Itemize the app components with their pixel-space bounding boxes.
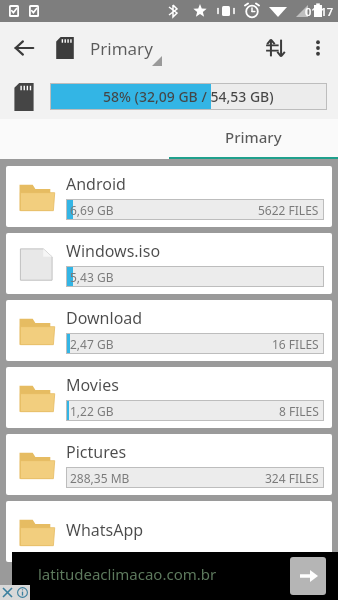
button[interactable]: Download	[6, 300, 332, 361]
staticText: Movies	[66, 374, 119, 396]
button[interactable]: Primary	[90, 22, 254, 74]
button[interactable]: Ad info	[15, 585, 30, 600]
button[interactable]: latitudeaclimacao.com.br	[12, 552, 338, 600]
staticText: 8 FILES	[279, 403, 319, 419]
staticText: latitudeaclimacao.com.br	[38, 564, 217, 584]
button[interactable]: WhatsApp	[6, 501, 332, 562]
staticText: 2,47 GB	[70, 336, 114, 352]
staticText: Primary	[90, 37, 153, 60]
staticText: Windows.iso	[66, 240, 161, 262]
staticText: 58% (32,09 GB / 54,53 GB)	[103, 87, 274, 106]
staticText: WhatsApp	[66, 519, 144, 541]
staticText: 01:17	[305, 4, 334, 19]
button[interactable]: Close ad	[0, 585, 15, 600]
button[interactable]: Open ad	[290, 557, 326, 595]
staticText: 16 FILES	[272, 336, 319, 352]
staticText: Pictures	[66, 441, 127, 463]
staticText: 324 FILES	[265, 470, 319, 486]
staticText: 288,35 MB	[70, 470, 130, 486]
button[interactable]: More options	[298, 28, 338, 68]
button[interactable]: Movies	[6, 367, 332, 428]
button[interactable]: Back	[0, 24, 48, 72]
button[interactable]: Pictures	[6, 434, 332, 495]
staticText: 1,22 GB	[70, 403, 114, 419]
staticText: 5,43 GB	[70, 269, 114, 285]
button[interactable]: Sort	[254, 26, 298, 70]
button[interactable]: Primary	[169, 119, 338, 159]
button[interactable]: Android	[6, 166, 332, 227]
staticText: 5622 FILES	[258, 202, 319, 218]
staticText: Download	[66, 307, 143, 329]
staticText: Android	[66, 173, 126, 195]
staticText: 6,69 GB	[70, 202, 114, 218]
button[interactable]: Windows.iso	[6, 233, 332, 294]
staticText: Primary	[225, 127, 282, 147]
